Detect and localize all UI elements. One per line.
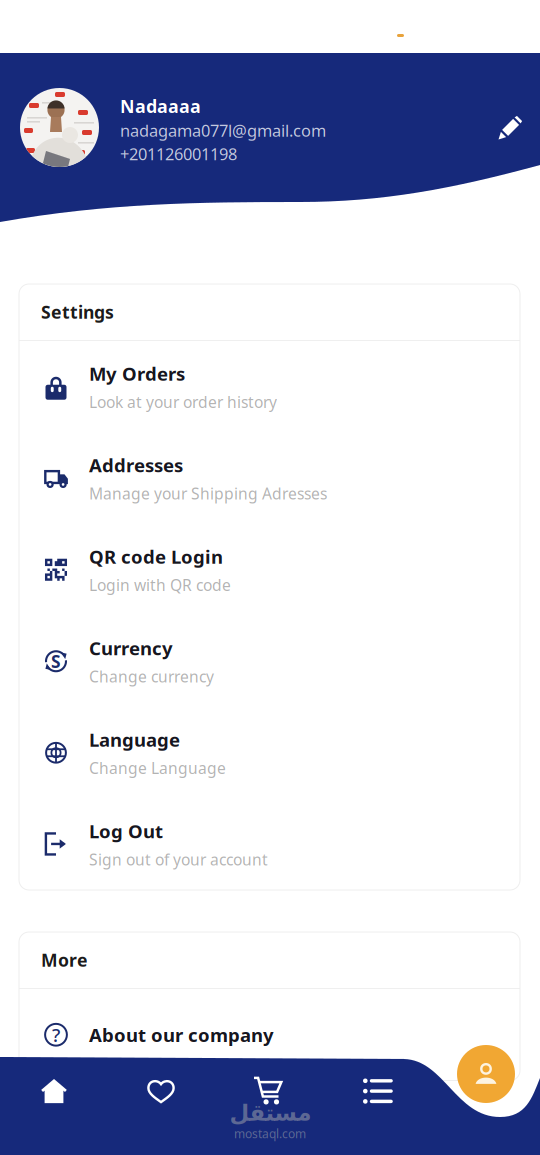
staticText: Settings bbox=[41, 300, 114, 324]
staticText: Language bbox=[89, 727, 180, 752]
button[interactable]: Addresses bbox=[19, 432, 520, 524]
staticText: My Orders bbox=[89, 361, 185, 386]
staticText: Manage your Shipping Adresses bbox=[89, 483, 327, 504]
staticText: Login with QR code bbox=[89, 574, 231, 595]
button[interactable]: QR code Login bbox=[19, 524, 520, 615]
staticText: QR code Login bbox=[89, 544, 223, 569]
button[interactable]: Log Out bbox=[19, 798, 520, 890]
staticText: Change currency bbox=[89, 666, 214, 687]
button[interactable]: S bbox=[19, 615, 520, 707]
staticText: Addresses bbox=[89, 452, 183, 478]
button[interactable]: Language bbox=[19, 707, 520, 798]
staticText: nadagama077l@gmail.com bbox=[120, 119, 326, 142]
button[interactable]: Categories bbox=[348, 1065, 408, 1117]
staticText: Sign out of your account bbox=[89, 849, 268, 870]
staticText: ? bbox=[52, 1022, 60, 1047]
staticText: Change Language bbox=[89, 757, 226, 778]
staticText: More bbox=[41, 948, 88, 972]
button[interactable]: My Orders bbox=[19, 341, 520, 432]
staticText: مستقل bbox=[229, 1100, 311, 1126]
staticText: Currency bbox=[89, 635, 173, 661]
button[interactable]: Home bbox=[24, 1065, 84, 1117]
staticText: Log Out bbox=[89, 818, 163, 844]
button[interactable]: Profile bbox=[457, 1045, 515, 1103]
button[interactable]: ? bbox=[19, 989, 520, 1080]
button[interactable]: Edit profile bbox=[488, 106, 532, 150]
staticText: Look at your order history bbox=[89, 391, 277, 412]
button[interactable]: Cart bbox=[238, 1065, 298, 1117]
staticText: About our company bbox=[89, 1022, 274, 1047]
staticText: S bbox=[51, 650, 61, 673]
staticText: +201126001198 bbox=[120, 143, 237, 165]
button[interactable]: Favourites bbox=[131, 1065, 191, 1117]
staticText: mostaql.com bbox=[234, 1126, 306, 1142]
staticText: Nadaaaa bbox=[120, 94, 201, 118]
